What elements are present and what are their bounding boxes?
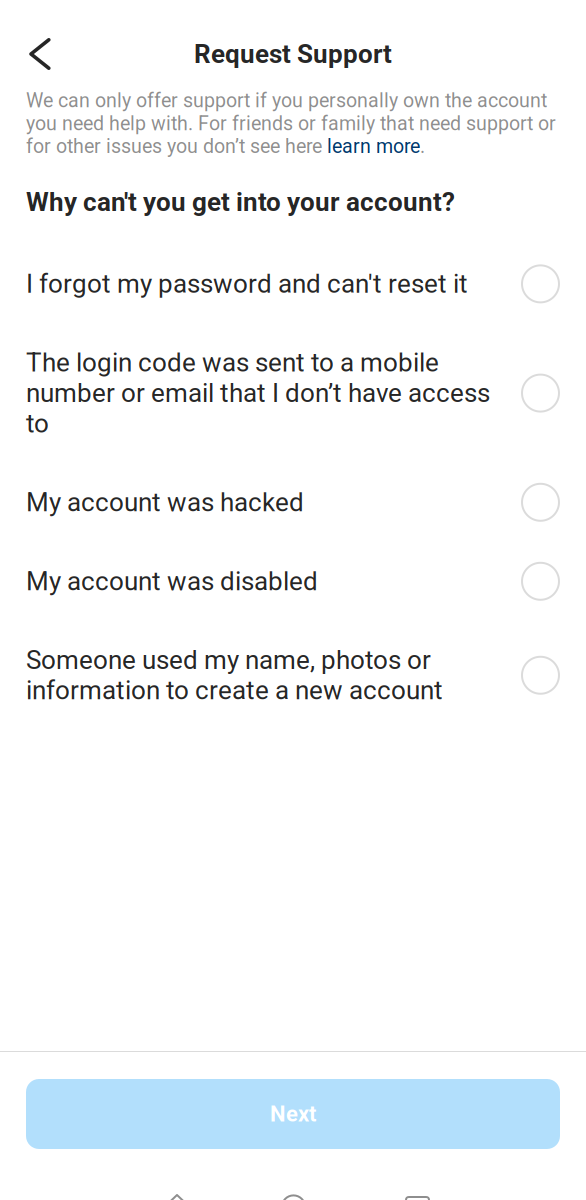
button[interactable]: I forgot my password and can't reset it bbox=[0, 265, 586, 302]
staticText: My account was hacked bbox=[26, 487, 304, 517]
staticText: Why can't you get into your account? bbox=[26, 187, 455, 217]
button[interactable]: Home bbox=[163, 1193, 191, 1200]
button[interactable]: Someone used my name, photos or informat… bbox=[0, 645, 586, 706]
staticText: My account was disabled bbox=[26, 566, 318, 596]
button[interactable]: We can only offer support if you persona… bbox=[0, 89, 586, 158]
button[interactable]: Back bbox=[0, 0, 75, 89]
button[interactable]: Next bbox=[26, 1079, 560, 1149]
staticText: Request Support bbox=[194, 39, 392, 69]
staticText: The login code was sent to a mobile numb… bbox=[26, 347, 490, 439]
button[interactable]: My account was disabled bbox=[0, 563, 586, 600]
button[interactable]: The login code was sent to a mobile numb… bbox=[0, 347, 586, 439]
button[interactable]: Reels bbox=[404, 1193, 432, 1200]
staticText: Next bbox=[270, 1101, 316, 1127]
staticText: I forgot my password and can't reset it bbox=[26, 269, 468, 299]
staticText: Someone used my name, photos or informat… bbox=[26, 645, 443, 706]
staticText: We can only offer support if you persona… bbox=[26, 89, 556, 158]
button[interactable]: Search bbox=[280, 1193, 308, 1200]
button[interactable]: My account was hacked bbox=[0, 484, 586, 521]
